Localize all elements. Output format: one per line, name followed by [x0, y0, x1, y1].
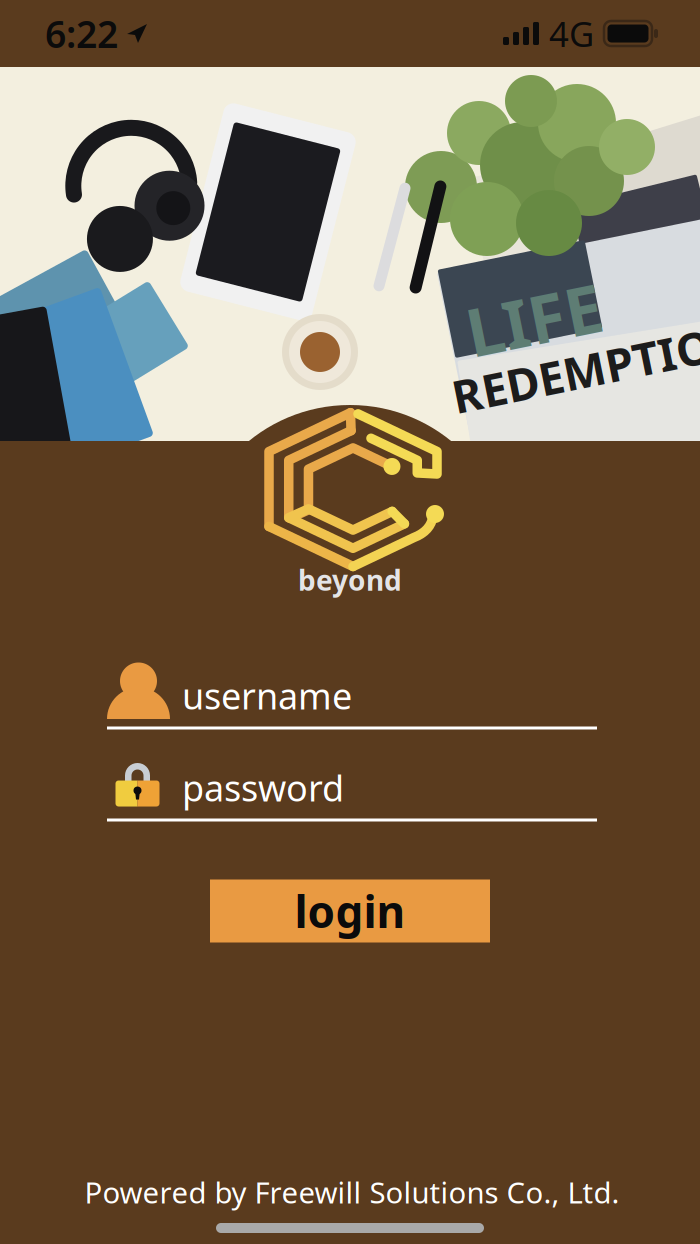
staticText: beyond [298, 561, 402, 599]
staticText: REDEMPTION [449, 337, 700, 397]
staticText: password [182, 764, 344, 811]
staticText: LIFE [465, 275, 602, 363]
button[interactable]: login [210, 879, 490, 942]
button[interactable]: password [107, 746, 597, 821]
staticText: 4G [549, 10, 594, 56]
staticText: login [294, 882, 405, 940]
button[interactable]: username [107, 654, 597, 729]
staticText: username [182, 672, 352, 719]
staticText: Powered by Freewill Solutions Co., Ltd. [84, 1172, 619, 1211]
staticText: 6:22 [45, 9, 118, 58]
